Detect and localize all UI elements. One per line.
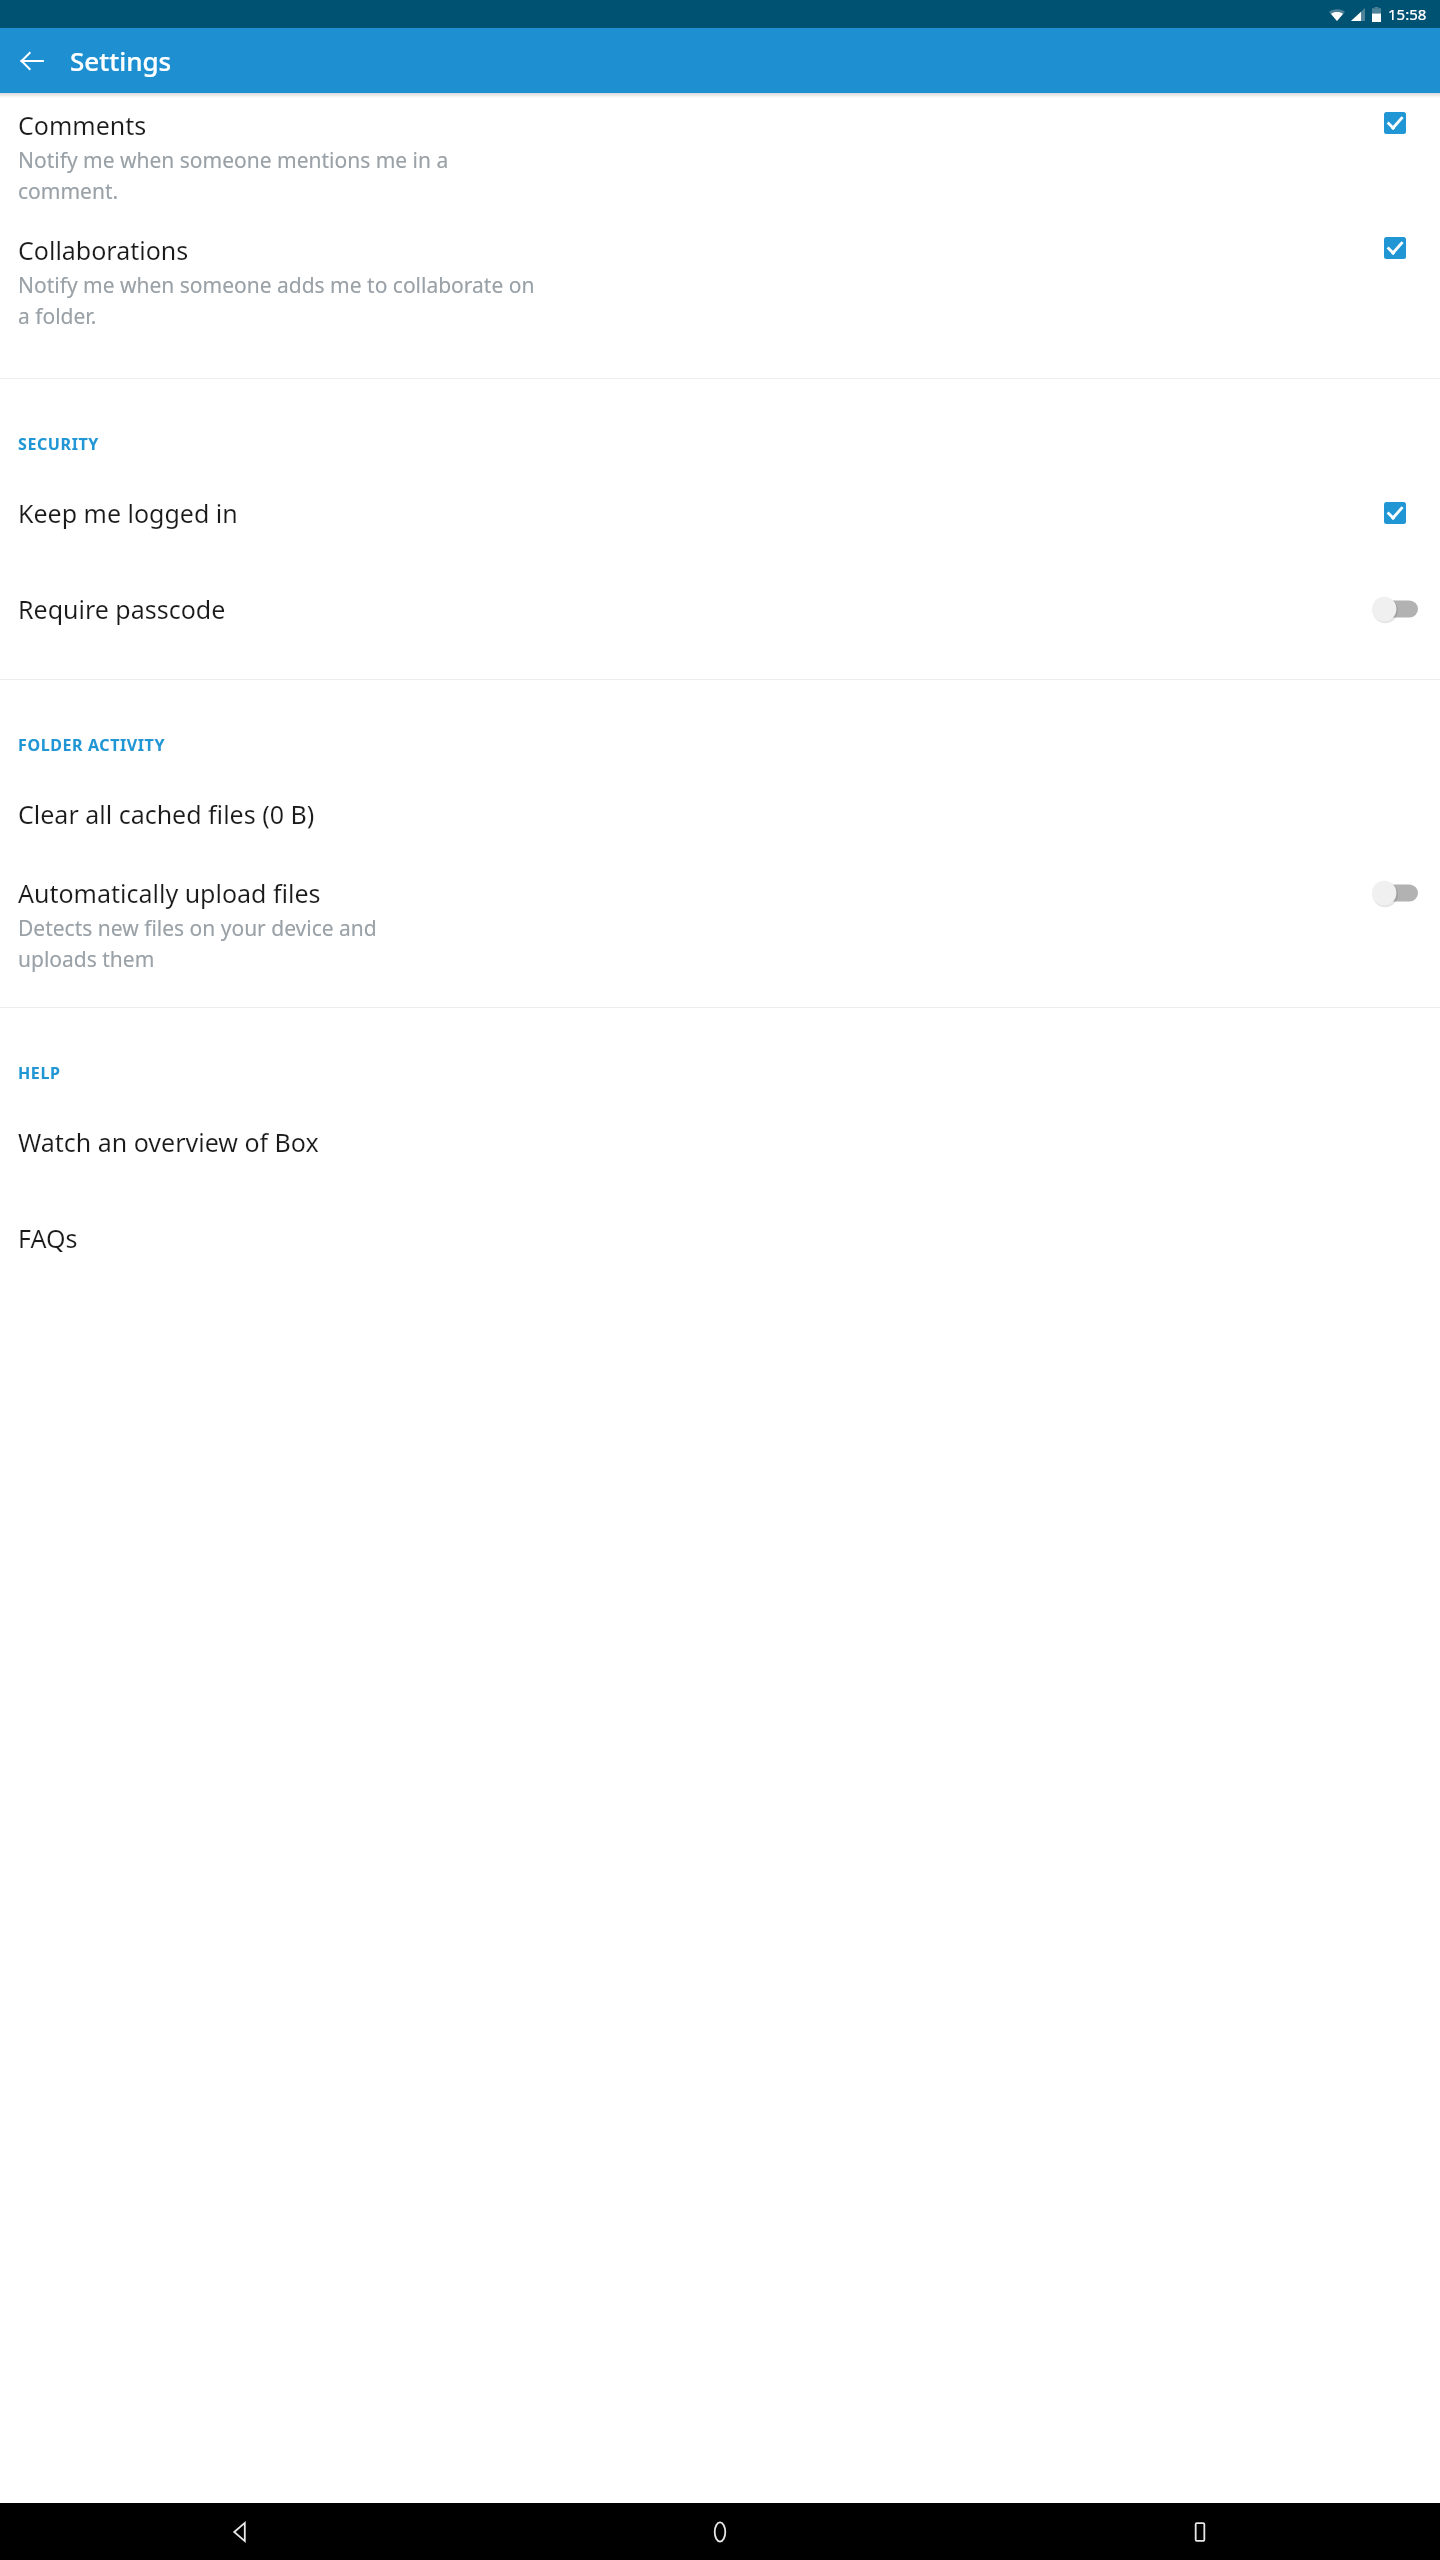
staticText: Detects new files on your device and upl… (18, 914, 377, 973)
staticText: FAQs (18, 1221, 1428, 1255)
button[interactable]: Automatically upload files (0, 862, 1440, 987)
button[interactable]: FAQs (0, 1190, 1440, 1286)
button[interactable]: Keep me logged in (0, 465, 1440, 561)
button[interactable]: Back (0, 2503, 480, 2560)
staticText: PUSH NOTIFICATIONS (18, 72, 202, 94)
staticText: 15:58 (1388, 4, 1427, 24)
staticText: Require passcode (18, 592, 1362, 626)
button[interactable]: Comments (0, 94, 1440, 219)
staticText: FOLDER ACTIVITY (18, 734, 166, 756)
button[interactable]: Recents (960, 2503, 1440, 2560)
staticText: Watch an overview of Box (18, 1125, 1428, 1159)
button[interactable]: Off (1372, 596, 1418, 622)
staticText: HELP (18, 1062, 61, 1084)
staticText: Automatically upload files (18, 876, 321, 910)
button[interactable]: Collaborations (0, 219, 1440, 344)
button[interactable]: Checked (1384, 502, 1406, 524)
staticText: Settings (70, 43, 172, 78)
staticText: Notify me when someone adds me to collab… (18, 271, 535, 330)
staticText: Notify me when someone mentions me in a … (18, 146, 449, 205)
button[interactable]: Checked (1384, 112, 1406, 134)
staticText: Keep me logged in (18, 496, 1362, 530)
button[interactable]: Watch an overview of Box (0, 1094, 1440, 1190)
button[interactable]: Back (4, 33, 60, 89)
button[interactable]: Checked (1384, 237, 1406, 259)
staticText: SECURITY (18, 433, 99, 455)
staticText: Clear all cached files (0 B) (18, 797, 1428, 831)
staticText: Comments (18, 108, 147, 142)
button[interactable]: Clear all cached files (0 B) (0, 766, 1440, 862)
staticText: Collaborations (18, 233, 189, 267)
button[interactable]: Off (1372, 880, 1418, 906)
button[interactable]: Home (480, 2503, 960, 2560)
button[interactable]: Require passcode (0, 561, 1440, 657)
